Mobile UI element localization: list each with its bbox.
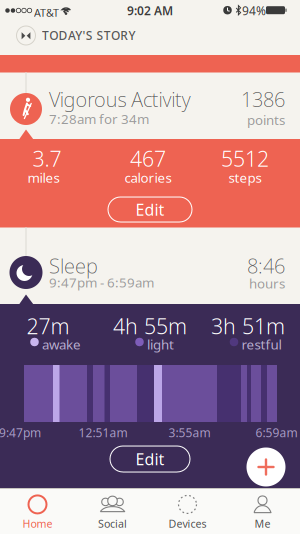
- staticText: calories: [124, 169, 171, 186]
- staticText: 12:51am: [78, 424, 127, 440]
- staticText: 4h 55m: [113, 312, 187, 340]
- button[interactable]: Add: [246, 447, 285, 486]
- staticText: Vigorous Activity: [49, 86, 191, 113]
- staticText: 94%: [242, 2, 266, 18]
- staticText: 3.7: [32, 144, 61, 173]
- staticText: light: [147, 335, 174, 353]
- staticText: Sleep: [49, 252, 98, 279]
- button[interactable]: Sleep: [0, 227, 300, 299]
- staticText: 3:55am: [168, 424, 210, 440]
- staticText: Devices: [168, 516, 206, 531]
- staticText: 9:47pm: [0, 424, 41, 440]
- staticText: hours: [249, 274, 285, 292]
- staticText: 8:46: [247, 252, 285, 279]
- staticText: Home: [22, 516, 52, 531]
- button[interactable]: Edit: [108, 197, 192, 222]
- staticText: Edit: [135, 448, 164, 470]
- staticText: 3h 51m: [211, 312, 285, 340]
- staticText: steps: [228, 169, 261, 186]
- staticText: TODAY'S STORY: [42, 27, 136, 43]
- button[interactable]: Me: [225, 492, 299, 534]
- staticText: 7:28am for 34m: [49, 110, 149, 128]
- staticText: Social: [98, 516, 127, 531]
- button[interactable]: Home: [0, 492, 74, 534]
- button[interactable]: Edit: [110, 446, 190, 472]
- staticText: 27m: [26, 312, 69, 340]
- button[interactable]: Vigorous Activity: [0, 72, 300, 139]
- button[interactable]: Social: [75, 492, 149, 534]
- staticText: miles: [27, 169, 59, 186]
- staticText: Me: [254, 516, 270, 531]
- button[interactable]: Devices: [150, 492, 224, 534]
- staticText: 1386: [241, 86, 285, 113]
- staticText: 9:02 AM: [127, 2, 173, 18]
- staticText: restful: [241, 335, 281, 353]
- staticText: Edit: [135, 199, 164, 220]
- staticText: 5512: [221, 144, 269, 173]
- staticText: AT&T: [34, 5, 59, 20]
- staticText: points: [247, 111, 285, 129]
- staticText: 467: [130, 144, 166, 173]
- staticText: 6:59am: [255, 424, 297, 440]
- staticText: awake: [42, 335, 81, 353]
- staticText: 9:47pm - 6:59am: [49, 273, 154, 291]
